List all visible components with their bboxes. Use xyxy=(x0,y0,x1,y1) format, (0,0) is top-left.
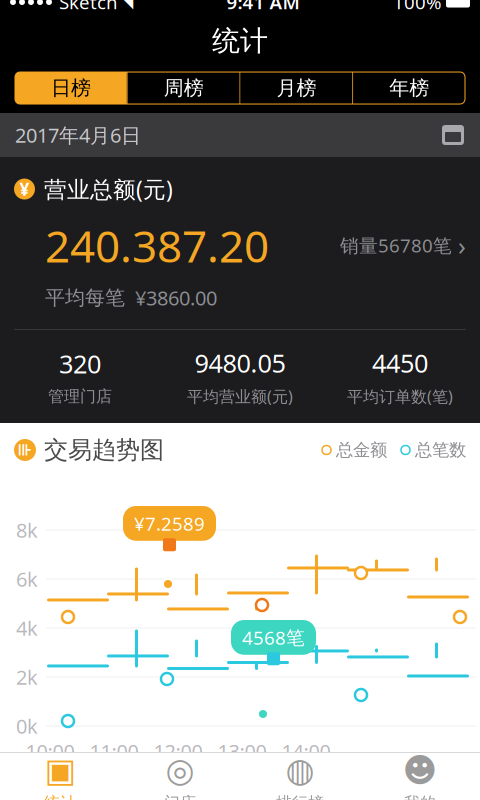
staticText: 平均订单数(笔) xyxy=(347,386,453,407)
staticText: 平均每笔 xyxy=(45,285,125,310)
button[interactable]: Rankings xyxy=(240,753,360,800)
staticText: 门店 xyxy=(164,793,196,800)
staticText: 交易趋势图 xyxy=(44,435,164,465)
button[interactable]: Stores xyxy=(120,753,240,800)
staticText: ⊪ xyxy=(17,441,32,459)
staticText: 4450 xyxy=(372,346,428,380)
staticText: 统计 xyxy=(44,793,76,800)
staticText: ☻ xyxy=(402,751,437,789)
staticText: 12:00 xyxy=(153,738,202,765)
staticText: 日榜 xyxy=(51,76,91,100)
staticText: 320 xyxy=(59,347,101,380)
button[interactable]: Mine xyxy=(360,753,480,800)
staticText: 9480.05 xyxy=(194,346,285,380)
staticText: 2017年4月6日 xyxy=(15,122,141,148)
staticText: › xyxy=(458,228,466,262)
staticText: 10:00 xyxy=(25,738,74,765)
staticText: ◥ xyxy=(121,0,133,11)
staticText: 管理门店 xyxy=(48,386,112,406)
staticText: ¥7.2589 xyxy=(134,511,205,536)
staticText: 平均营业额(元) xyxy=(187,386,293,407)
staticText: 总金额 xyxy=(336,439,387,461)
staticText: 年榜 xyxy=(389,76,429,100)
staticText: 14:00 xyxy=(281,738,330,765)
staticText: 营业总额(元) xyxy=(44,174,173,204)
staticText: 排行榜 xyxy=(276,793,324,800)
staticText: ¥3860.00 xyxy=(135,284,217,311)
staticText: ◎ xyxy=(165,751,194,789)
staticText: 4568笔 xyxy=(242,625,305,650)
button[interactable]: 销量56780笔 xyxy=(340,228,466,262)
staticText: Sketch xyxy=(59,0,118,14)
staticText: 240.387.20 xyxy=(45,216,269,274)
button[interactable]: 年榜 xyxy=(353,72,465,104)
staticText: ◍ xyxy=(285,751,314,789)
staticText: 0k xyxy=(16,713,38,739)
staticText: ¥ xyxy=(19,178,29,201)
staticText: ▣ xyxy=(44,751,75,789)
staticText: 周榜 xyxy=(164,76,204,100)
button[interactable]: 月榜 xyxy=(240,72,352,104)
staticText: 4k xyxy=(16,615,38,641)
staticText: 9:41 AM xyxy=(226,0,299,14)
staticText: 销量56780笔 xyxy=(340,233,452,258)
staticText: 总笔数 xyxy=(415,439,466,461)
staticText: 13:00 xyxy=(217,738,266,765)
button[interactable]: 日榜 xyxy=(15,72,127,104)
staticText: 8k xyxy=(16,517,38,543)
staticText: 100% xyxy=(393,0,442,14)
staticText: 11:00 xyxy=(89,738,138,765)
button[interactable]: 2017年4月6日 xyxy=(0,113,480,157)
button[interactable]: Statistics xyxy=(0,753,120,800)
staticText: 2k xyxy=(16,664,38,690)
staticText: 统计 xyxy=(212,24,268,58)
staticText: 我的 xyxy=(404,793,436,800)
staticText: 月榜 xyxy=(276,76,316,100)
staticText: 6k xyxy=(16,566,38,592)
button[interactable]: 周榜 xyxy=(128,72,240,104)
